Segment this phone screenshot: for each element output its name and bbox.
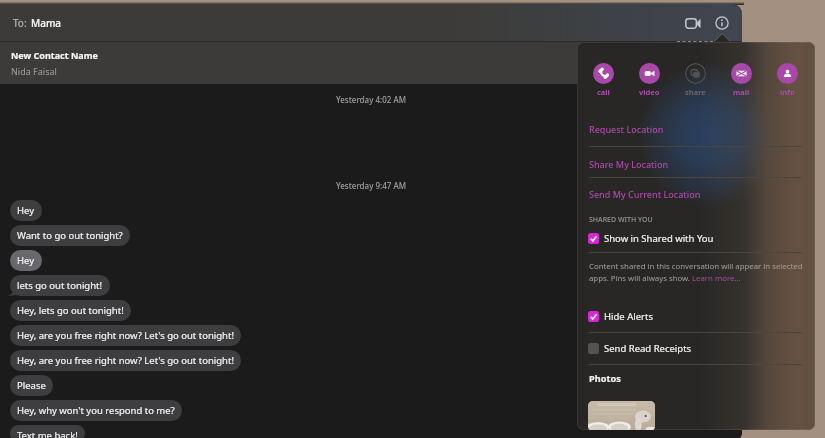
staticText: Hey, why won't you respond to me? <box>17 404 175 417</box>
staticText: Hey, are you free right now? Let's go ou… <box>17 354 234 367</box>
staticText: share <box>685 87 706 97</box>
staticText: video <box>639 87 660 97</box>
staticText: Want to go out tonight? <box>17 229 123 242</box>
button[interactable]: Hide Alerts <box>577 309 815 324</box>
staticText: Mama <box>31 16 62 30</box>
button[interactable]: FaceTime video call <box>679 8 707 38</box>
staticText: Yesterday 9:47 AM <box>0 180 742 191</box>
staticText: Request Location <box>589 123 664 135</box>
staticText: Yesterday 4:02 AM <box>0 94 742 105</box>
staticText: info <box>780 87 795 97</box>
staticText: Send Read Receipts <box>604 342 692 355</box>
staticText: Hey, are you free right now? Let's go ou… <box>17 329 234 342</box>
button[interactable]: lets go out tonight! <box>10 275 110 296</box>
button[interactable]: Send Read Receipts <box>577 341 815 356</box>
staticText: call <box>597 87 610 97</box>
button[interactable]: Share My Location <box>577 156 815 172</box>
button[interactable]: mail <box>718 63 764 97</box>
staticText: Please <box>17 379 46 392</box>
button[interactable]: video <box>626 63 672 97</box>
button[interactable]: Request Location <box>577 121 815 137</box>
button[interactable]: share <box>672 63 718 97</box>
staticText: lets go out tonight! <box>17 279 103 292</box>
staticText: Send My Current Location <box>589 188 701 200</box>
staticText: Share My Location <box>589 158 669 170</box>
staticText: SHARED WITH YOU <box>589 215 653 225</box>
button[interactable]: Want to go out tonight? <box>10 225 130 246</box>
button[interactable]: info <box>764 63 810 97</box>
button[interactable]: call <box>580 63 626 97</box>
staticText: Text me back! <box>17 429 78 438</box>
button[interactable]: Hey <box>10 250 42 271</box>
staticText: Learn more... <box>692 273 741 284</box>
staticText: New Contact Name <box>11 49 98 61</box>
staticText: Show in Shared with You <box>604 232 714 245</box>
staticText: mail <box>733 87 750 97</box>
button[interactable]: Please <box>10 375 53 396</box>
staticText: Hide Alerts <box>604 310 653 323</box>
staticText: Photos <box>589 372 621 385</box>
staticText: To: <box>13 16 27 30</box>
staticText: Hey <box>17 254 35 267</box>
button[interactable]: Hey, why won't you respond to me? <box>10 400 182 421</box>
button[interactable]: Shared photo <box>588 401 655 430</box>
button[interactable]: Details <box>708 8 736 38</box>
button[interactable]: Hey, are you free right now? Let's go ou… <box>10 350 241 371</box>
button[interactable]: Text me back! <box>10 425 85 438</box>
staticText: Nida Faisal <box>11 65 57 77</box>
button[interactable]: Show in Shared with You <box>577 231 815 246</box>
button[interactable]: Send My Current Location <box>577 186 815 202</box>
staticText: Content shared in this conversation will… <box>589 261 803 272</box>
staticText: apps. Pins will always show. <box>589 273 692 284</box>
button[interactable]: Hey <box>10 200 42 221</box>
staticText: Hey <box>17 204 35 217</box>
button[interactable]: Hey, are you free right now? Let's go ou… <box>10 325 241 346</box>
button[interactable]: Hey, lets go out tonight! <box>10 300 131 321</box>
staticText: Hey, lets go out tonight! <box>17 304 124 317</box>
